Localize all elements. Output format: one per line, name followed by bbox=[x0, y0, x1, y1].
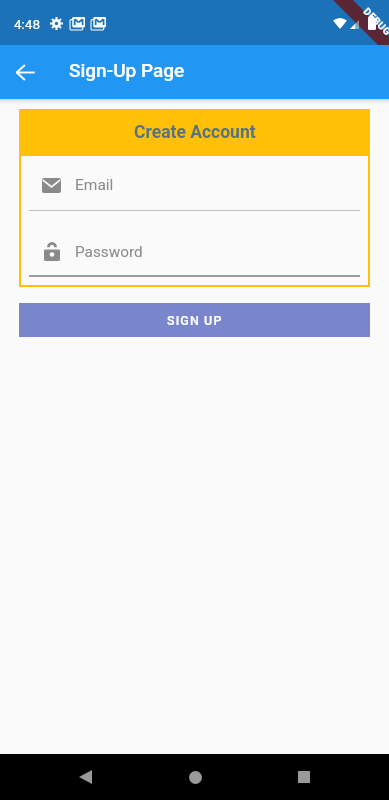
staticText: Sign-Up Page bbox=[69, 59, 185, 81]
button[interactable]: Back bbox=[61, 754, 109, 800]
button[interactable]: SIGN UP bbox=[19, 303, 370, 337]
staticText: SIGN UP bbox=[167, 313, 223, 328]
staticText: Password bbox=[75, 243, 143, 261]
staticText: Email bbox=[75, 176, 114, 194]
button[interactable]: Home bbox=[171, 754, 219, 800]
staticText: DEBUG bbox=[361, 6, 389, 38]
button[interactable]: Back bbox=[3, 48, 48, 96]
button[interactable]: Recents bbox=[280, 754, 328, 800]
staticText: Create Account bbox=[134, 122, 256, 143]
staticText: 4:48 bbox=[14, 16, 41, 32]
